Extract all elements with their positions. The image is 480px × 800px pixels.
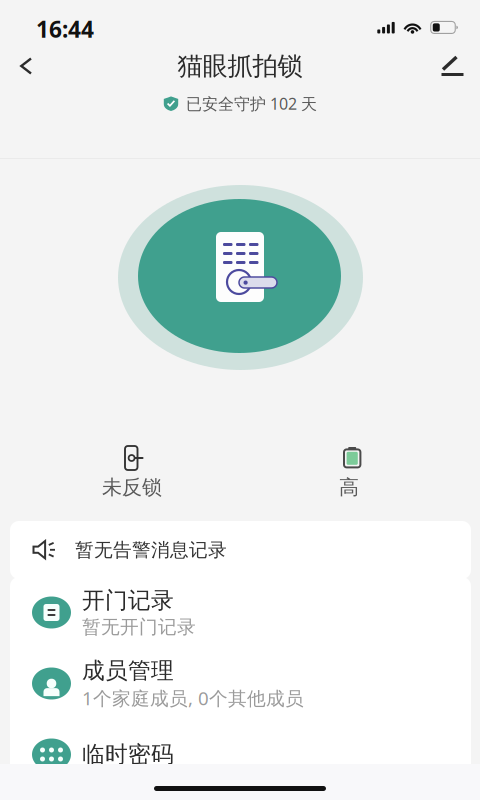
button[interactable]: Back [2, 44, 50, 88]
staticText: 已安全守护 102 天 [186, 93, 317, 114]
staticText: 未反锁 [102, 475, 162, 500]
staticText: 猫眼抓拍锁 [177, 50, 302, 81]
button[interactable]: 开门记录 [10, 577, 471, 648]
staticText: 1个家庭成员, 0个其他成员 [82, 685, 304, 710]
staticText: 暂无开门记录 [82, 615, 196, 638]
button[interactable]: Edit [429, 44, 477, 88]
button[interactable]: 成员管理 [10, 648, 471, 719]
button[interactable]: 临时密码 [10, 719, 471, 790]
staticText: 成员管理 [82, 657, 174, 684]
staticText: 高 [339, 475, 359, 500]
staticText: 暂无告警消息记录 [75, 538, 227, 561]
staticText: 16:44 [36, 14, 94, 44]
staticText: 开门记录 [82, 587, 174, 614]
button[interactable]: 暂无告警消息记录 [10, 521, 471, 579]
staticText: 临时密码 [82, 741, 174, 768]
